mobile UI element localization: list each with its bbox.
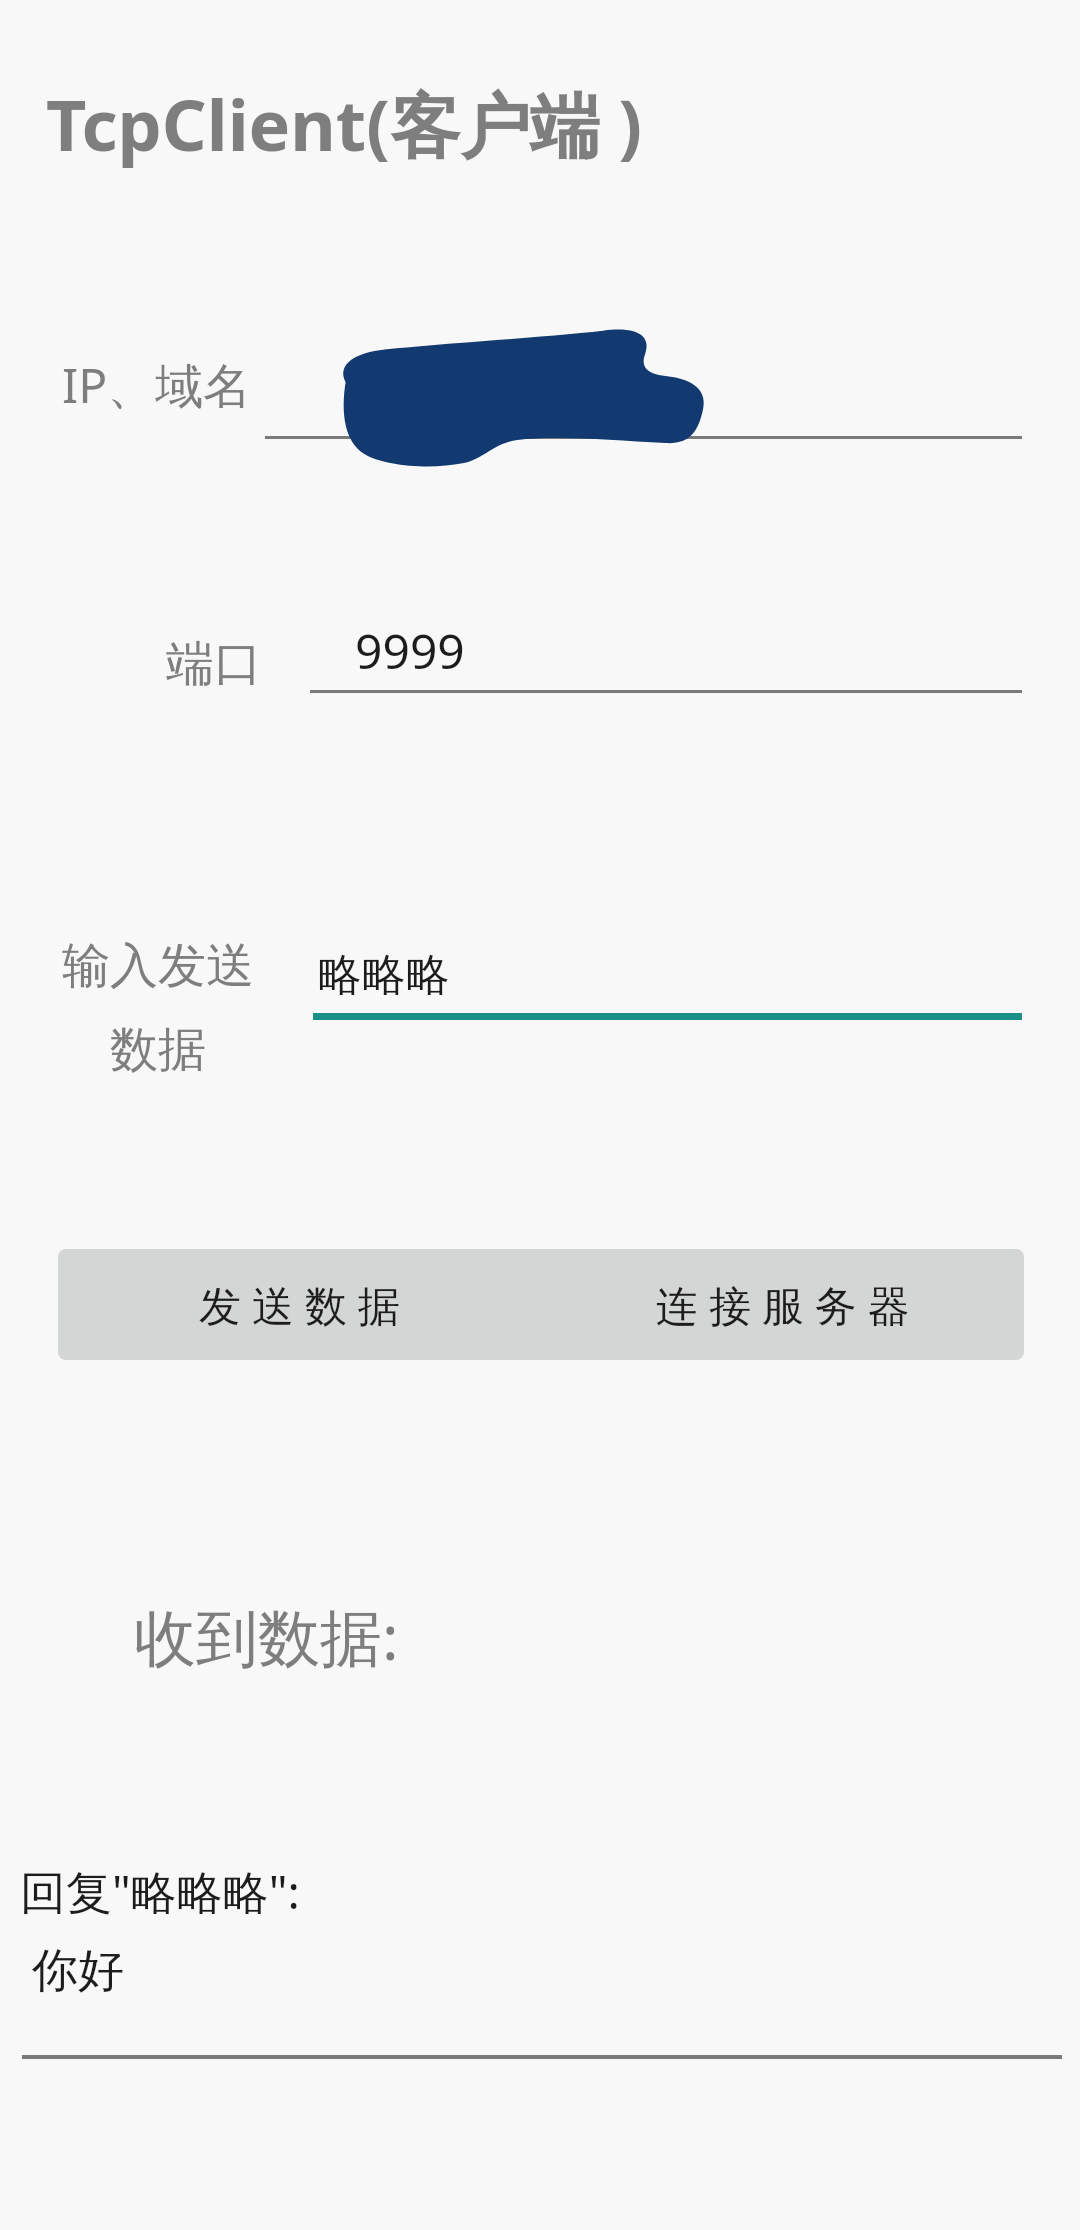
staticText: 9999 bbox=[355, 618, 465, 683]
button[interactable]: 发 送 数 据 bbox=[58, 1249, 541, 1360]
staticText: 回复"略略略": 你好 bbox=[20, 1860, 300, 2000]
staticText: 端口 bbox=[62, 634, 262, 694]
staticText: 发 送 数 据 bbox=[199, 1276, 400, 1333]
staticText: 连 接 服 务 器 bbox=[656, 1276, 910, 1333]
staticText: TcpClient(客户端 ) bbox=[46, 76, 642, 172]
button[interactable]: 连 接 服 务 器 bbox=[541, 1249, 1024, 1360]
staticText: IP、域名 bbox=[62, 352, 262, 418]
staticText: 收到数据: bbox=[134, 1594, 399, 1679]
staticText: 略略略 bbox=[318, 948, 450, 1003]
staticText: 输入发送数据 bbox=[54, 936, 262, 1080]
